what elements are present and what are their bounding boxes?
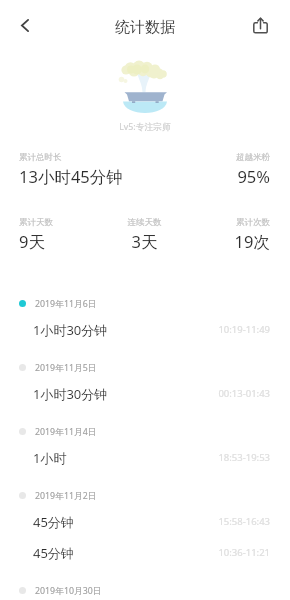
staticText: 累计次数	[19, 217, 270, 228]
staticText: 3天	[19, 230, 270, 253]
staticText: 2019年11月6日	[35, 298, 97, 310]
staticText: 连续天数	[19, 217, 270, 228]
button[interactable]: 1小时30分钟	[0, 378, 290, 409]
staticText: 1小时30分钟	[33, 321, 108, 339]
staticText: 2019年11月5日	[35, 362, 97, 374]
staticText: 19次	[19, 230, 270, 253]
staticText: 10:36-11:21	[82, 546, 270, 559]
staticText: 2019年11月4日	[35, 426, 97, 438]
staticText: 45分钟	[33, 544, 74, 562]
staticText: 00:13-01:43	[116, 387, 270, 400]
button[interactable]: 45分钟	[0, 506, 290, 537]
staticText: 18:53-19:53	[75, 451, 270, 464]
staticText: Lv5:专注宗师	[0, 121, 290, 133]
staticText: 累计总时长	[19, 152, 270, 163]
button[interactable]: Back	[8, 8, 42, 42]
button[interactable]: 1小时30分钟	[0, 314, 290, 345]
staticText: 13小时45分钟	[19, 165, 270, 188]
staticText: 1小时	[33, 449, 67, 467]
staticText: 95%	[19, 165, 270, 187]
button[interactable]: 1小时	[0, 442, 290, 473]
button[interactable]: 45分钟	[0, 537, 290, 568]
staticText: 超越米粉	[19, 152, 270, 163]
staticText: 9天	[19, 230, 270, 253]
staticText: 15:58-16:43	[82, 515, 270, 528]
button[interactable]: Share	[245, 10, 275, 40]
staticText: 1小时30分钟	[33, 385, 108, 403]
staticText: 2019年11月2日	[35, 490, 97, 502]
staticText: 45分钟	[33, 513, 74, 531]
staticText: 10:19-11:49	[116, 323, 270, 336]
staticText: 2019年10月30日	[35, 585, 102, 597]
staticText: 统计数据	[0, 18, 290, 37]
staticText: 累计天数	[19, 217, 270, 228]
